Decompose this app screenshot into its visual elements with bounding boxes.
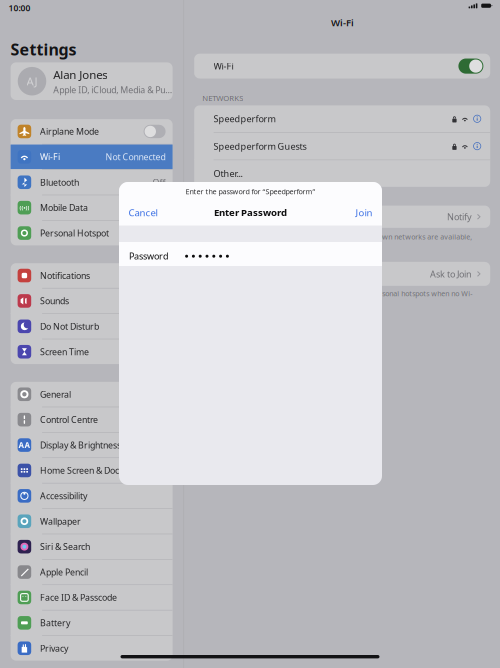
button[interactable]: Screen Time [11, 339, 173, 364]
staticText: Face ID & Passcode [40, 591, 117, 603]
staticText: Password [129, 250, 169, 262]
staticText: Control Centre [40, 414, 98, 426]
staticText: AA [18, 440, 30, 450]
button[interactable]: Sounds [11, 289, 173, 313]
staticText: ((•)) [19, 204, 29, 211]
staticText: Airplane Mode [40, 125, 99, 137]
staticText: Siri & Search [40, 541, 90, 553]
button[interactable]: Wallpaper [11, 509, 173, 534]
staticText: Bluetooth [40, 176, 79, 188]
button[interactable]: Control Centre [11, 407, 173, 432]
staticText: Speedperform [214, 113, 276, 125]
staticText: Ask to Join [430, 268, 472, 280]
button[interactable]: Siri & Search [11, 534, 173, 559]
staticText: Not Connected [106, 151, 166, 163]
staticText: Personal Hotspot [40, 227, 109, 239]
button[interactable]: ((•)) [11, 195, 173, 220]
button[interactable]: Personal Hotspot [11, 221, 173, 245]
button[interactable]: Wi-Fi [194, 54, 490, 78]
staticText: Settings [10, 38, 76, 60]
staticText: Known networks will be joined automatica… [202, 232, 472, 251]
staticText: Home Screen & Dock [40, 464, 124, 476]
staticText: Speedperform Guests [214, 140, 307, 152]
staticText: Enter Password [214, 206, 287, 219]
button[interactable]: Privacy [11, 636, 173, 661]
button[interactable]: Speedperform Guests [194, 133, 490, 159]
staticText: AJ [26, 73, 37, 89]
button[interactable]: Other... [194, 160, 490, 187]
button[interactable]: AJ [11, 62, 173, 100]
staticText: Wi-Fi [331, 16, 354, 29]
staticText: Join [355, 206, 372, 219]
button[interactable]: Home Screen & Dock [11, 458, 173, 483]
button[interactable]: General [11, 382, 173, 407]
staticText: Wi-Fi [214, 60, 234, 72]
staticText: Off [153, 176, 166, 188]
button[interactable]: Ask to Join Networks [194, 206, 490, 228]
button[interactable]: Wi-Fi [11, 144, 173, 169]
staticText: Cancel [128, 206, 157, 219]
staticText: General [40, 388, 71, 400]
button[interactable]: Do Not Disturb [11, 314, 173, 339]
staticText: Other... [214, 167, 243, 180]
staticText: 10:00 [8, 2, 30, 14]
button[interactable]: Apple Pencil [11, 560, 173, 584]
staticText: Apple Pencil [40, 566, 88, 578]
staticText: Wi-Fi [40, 151, 60, 163]
button[interactable]: Battery [11, 610, 173, 635]
staticText: NETWORKS [202, 93, 243, 103]
button[interactable]: Join [347, 205, 382, 220]
button[interactable]: Cancel [119, 205, 165, 220]
staticText: Display & Brightness [40, 439, 121, 451]
staticText: Notify [447, 211, 472, 223]
staticText: Screen Time [40, 346, 89, 358]
button[interactable]: Bluetooth [11, 170, 173, 195]
button[interactable]: Speedperform [194, 105, 490, 132]
button[interactable]: Auto-Join Hotspot [194, 262, 490, 286]
staticText: Mobile Data [40, 202, 88, 214]
staticText: Battery [40, 617, 70, 629]
staticText: Enter the password for “Speedperform” [185, 186, 315, 196]
staticText: Apple ID, iCloud, Media & Purchases [53, 84, 173, 96]
staticText: Sounds [40, 295, 69, 307]
staticText: Allow this device to automatically disco… [202, 289, 472, 308]
button[interactable]: Accessibility [11, 483, 173, 508]
button[interactable]: AA [11, 433, 173, 457]
staticText: Ask to Join Networks [214, 211, 298, 223]
button[interactable]: Airplane Mode [11, 119, 173, 144]
staticText: Do Not Disturb [40, 320, 99, 332]
button[interactable]: Notifications [11, 263, 173, 288]
staticText: Accessibility [40, 490, 87, 502]
button[interactable]: Face ID & Passcode [11, 585, 173, 610]
staticText: Privacy [40, 642, 68, 654]
staticText: Notifications [40, 270, 90, 282]
staticText: Alan Jones [53, 67, 107, 82]
staticText: Wallpaper [40, 515, 81, 527]
